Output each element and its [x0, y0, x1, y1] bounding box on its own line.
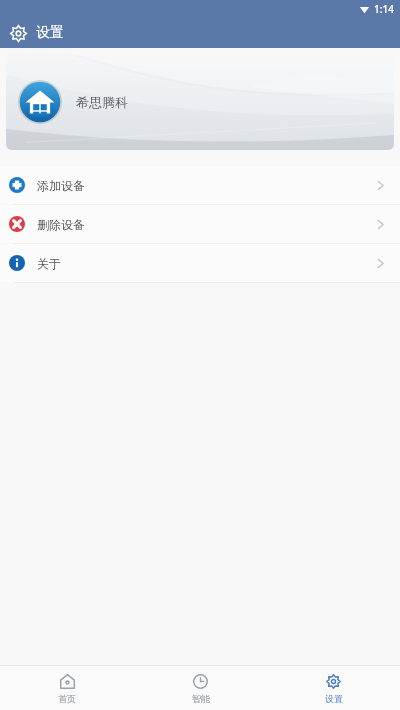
- button[interactable]: 删除设备: [0, 205, 400, 243]
- other: Settings: [10, 25, 27, 42]
- staticText: 首页: [58, 693, 76, 704]
- staticText: 删除设备: [37, 217, 375, 232]
- button[interactable]: 设置: [267, 666, 400, 710]
- staticText: 设置: [36, 24, 64, 42]
- button[interactable]: 关于: [0, 244, 400, 282]
- button[interactable]: 希思腾科: [6, 54, 394, 150]
- staticText: 设置: [325, 693, 343, 704]
- staticText: 添加设备: [37, 178, 375, 193]
- staticText: 智能: [192, 693, 210, 704]
- button[interactable]: 智能: [134, 666, 267, 710]
- staticText: 1:14: [374, 2, 394, 16]
- button[interactable]: 首页: [0, 666, 134, 710]
- staticText: 希思腾科: [76, 94, 128, 110]
- button[interactable]: 添加设备: [0, 166, 400, 204]
- staticText: 关于: [37, 256, 375, 271]
